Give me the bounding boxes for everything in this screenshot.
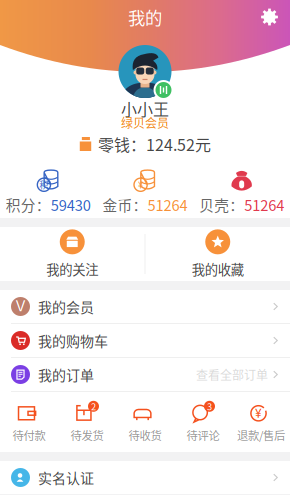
staticText: 贝壳： xyxy=(199,194,244,215)
button[interactable]: Avatar xyxy=(118,45,171,101)
staticText: 我的收藏 xyxy=(192,259,244,279)
staticText: 零钱：124.52元 xyxy=(98,132,211,156)
staticText: 我的会员 xyxy=(38,296,94,317)
staticText: 我的 xyxy=(128,4,162,30)
staticText: 实名认证 xyxy=(38,467,94,488)
button[interactable]: 实名认证 xyxy=(0,461,290,494)
button[interactable]: 待收货 xyxy=(116,401,174,443)
staticText: 我的关注 xyxy=(46,259,98,279)
button[interactable]: 我的收藏 xyxy=(145,220,290,288)
staticText: 我的购物车 xyxy=(38,330,108,351)
staticText: 金币： xyxy=(102,194,147,215)
staticText: 待付款 xyxy=(12,427,45,443)
staticText: 小小王 xyxy=(121,97,169,120)
button[interactable]: 贝壳： xyxy=(193,171,290,215)
staticText: 我的订单 xyxy=(38,364,94,385)
button[interactable]: 我的购物车 xyxy=(0,324,290,357)
staticText: 待发货 xyxy=(70,427,103,443)
button[interactable]: 待付款 xyxy=(0,401,58,443)
staticText: 积 xyxy=(39,178,48,191)
staticText: 2 xyxy=(91,399,96,413)
staticText: 待收货 xyxy=(128,427,161,443)
staticText: ¥ xyxy=(255,406,262,420)
staticText: 绿贝会员 xyxy=(121,114,169,131)
button[interactable]: Settings xyxy=(261,8,290,25)
button[interactable]: 我的关注 xyxy=(0,220,144,288)
button[interactable]: ¥ xyxy=(97,171,193,215)
staticText: V xyxy=(15,297,25,315)
staticText: 查看全部订单 xyxy=(196,366,268,383)
staticText: 积分： xyxy=(6,194,51,215)
button[interactable]: 积 xyxy=(0,171,97,215)
staticText: 59430 xyxy=(51,194,91,215)
staticText: 待评论 xyxy=(186,427,219,443)
staticText: 退款/售后 xyxy=(237,427,285,443)
button[interactable]: V xyxy=(0,290,290,323)
button[interactable]: 3 xyxy=(174,401,232,443)
staticText: 3 xyxy=(207,399,212,413)
button[interactable]: ¥ xyxy=(232,401,290,443)
staticText: 51264 xyxy=(244,194,284,215)
staticText: ¥ xyxy=(138,178,143,191)
button[interactable]: 我的订单 xyxy=(0,358,290,391)
button[interactable]: 2 xyxy=(58,401,116,443)
staticText: 51264 xyxy=(147,194,187,215)
